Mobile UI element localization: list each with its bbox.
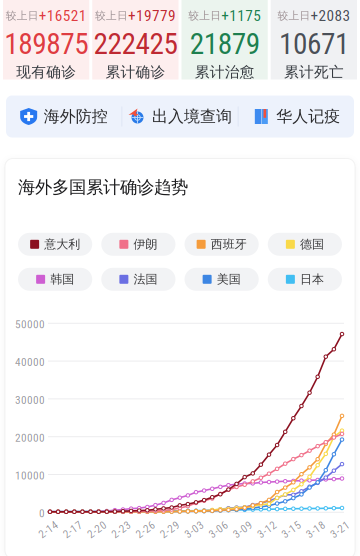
button[interactable]: 海外防控 (6, 95, 121, 137)
staticText: 海外多国累计确诊趋势 (18, 176, 188, 198)
staticText: 0 (39, 507, 45, 520)
staticText: 21879 (190, 27, 260, 61)
staticText: 意大利 (44, 237, 80, 252)
staticText: 较上日 (188, 9, 221, 22)
staticText: 现有确诊 (16, 63, 76, 81)
staticText: 3-12 (257, 523, 278, 536)
staticText: 30000 (15, 393, 45, 407)
staticText: 10000 (15, 469, 45, 482)
staticText: 较上日 (6, 9, 39, 22)
staticText: 10671 (279, 27, 349, 61)
staticText: 2-20 (87, 523, 108, 536)
staticText: 2-17 (62, 523, 83, 536)
button[interactable]: 西班牙 (184, 233, 259, 256)
staticText: +1175 (221, 7, 261, 25)
button[interactable]: 意大利 (18, 233, 92, 256)
staticText: 德国 (300, 237, 324, 252)
button[interactable]: 德国 (268, 233, 342, 256)
staticText: 伊朗 (133, 237, 157, 252)
staticText: 3-21 (330, 523, 351, 536)
button[interactable]: 伊朗 (101, 233, 175, 256)
staticText: 40000 (15, 356, 45, 369)
button[interactable]: 法国 (101, 268, 175, 291)
staticText: 189875 (4, 27, 88, 61)
staticText: 2-14 (38, 523, 59, 536)
staticText: 20000 (15, 431, 45, 444)
staticText: 2-29 (159, 523, 180, 536)
staticText: 50000 (15, 318, 45, 331)
staticText: 华人记疫 (276, 107, 340, 126)
staticText: 累计确诊 (105, 63, 165, 81)
button[interactable]: 日本 (268, 268, 342, 291)
staticText: 韩国 (50, 272, 74, 287)
staticText: +2083 (310, 7, 350, 25)
staticText: +19779 (128, 7, 176, 25)
staticText: 较上日 (277, 9, 310, 22)
staticText: 法国 (133, 272, 157, 287)
staticText: 累计治愈 (195, 63, 255, 81)
staticText: 3-06 (208, 523, 229, 536)
staticText: +16521 (39, 7, 87, 25)
button[interactable]: 出入境查询 (122, 95, 238, 137)
staticText: 3-18 (305, 523, 326, 536)
staticText: 3-09 (232, 523, 253, 536)
staticText: 美国 (217, 272, 241, 287)
button[interactable]: 美国 (184, 268, 259, 291)
button[interactable]: 韩国 (18, 268, 92, 291)
staticText: 海外防控 (44, 107, 108, 126)
staticText: 2-26 (135, 523, 156, 536)
staticText: 出入境查询 (152, 107, 232, 126)
button[interactable]: 华人记疫 (239, 95, 354, 137)
staticText: 3-03 (184, 523, 205, 536)
staticText: 3-15 (281, 523, 302, 536)
staticText: 日本 (300, 272, 324, 287)
staticText: 较上日 (95, 9, 128, 22)
staticText: 2-23 (111, 523, 132, 536)
staticText: 累计死亡 (284, 63, 344, 81)
staticText: 222425 (93, 27, 177, 61)
staticText: 西班牙 (211, 237, 247, 252)
